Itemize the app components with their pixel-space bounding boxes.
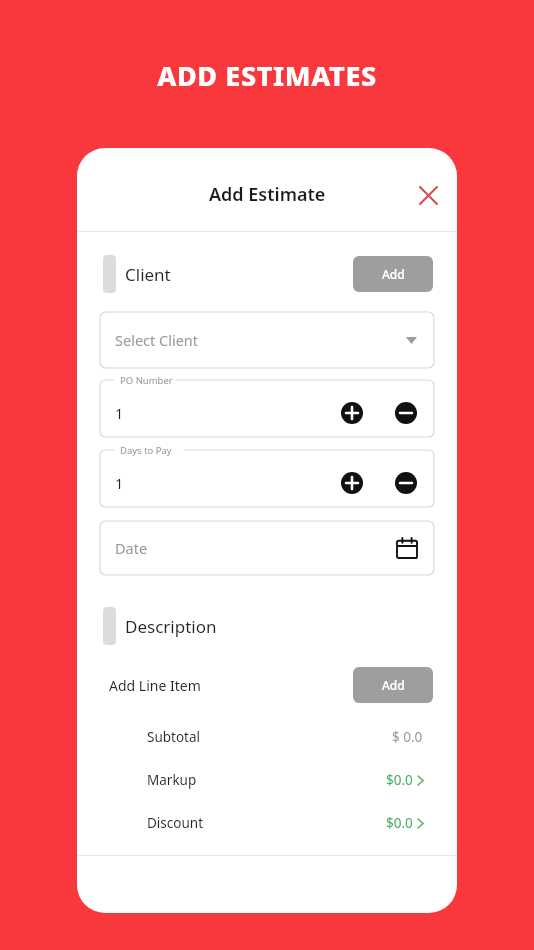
staticText: Select Client xyxy=(115,330,199,350)
button[interactable]: Increase xyxy=(337,468,367,498)
staticText: Date xyxy=(115,538,148,558)
staticText: Discount xyxy=(147,814,204,832)
staticText: Client xyxy=(125,263,171,286)
button[interactable]: Close xyxy=(410,177,446,213)
button[interactable]: Decrease xyxy=(391,468,421,498)
button[interactable]: Discount xyxy=(77,811,457,835)
button[interactable]: Date xyxy=(100,521,434,575)
staticText: Subtotal xyxy=(147,728,201,746)
staticText: Markup xyxy=(147,771,197,789)
button[interactable]: Increase xyxy=(337,398,367,428)
staticText: Add xyxy=(382,266,405,282)
button[interactable]: Add xyxy=(353,667,433,703)
button[interactable]: Add xyxy=(353,256,433,292)
button[interactable]: Decrease xyxy=(391,398,421,428)
staticText: Add Line Item xyxy=(109,676,201,695)
other: Pick date xyxy=(394,535,420,561)
staticText: $ 0.0 xyxy=(392,728,423,746)
staticText: PO Number xyxy=(120,374,173,387)
button[interactable]: Subtotal xyxy=(77,725,457,749)
button[interactable]: Select Client xyxy=(100,312,434,368)
staticText: 1 xyxy=(115,473,124,493)
staticText: ADD ESTIMATES xyxy=(157,57,377,94)
staticText: Add xyxy=(382,677,405,693)
staticText: Days to Pay xyxy=(120,444,172,457)
staticText: $0.0 xyxy=(386,814,413,832)
staticText: $0.0 xyxy=(386,771,413,789)
staticText: 1 xyxy=(115,403,124,423)
staticText: Add Estimate xyxy=(209,182,326,207)
button[interactable]: Markup xyxy=(77,768,457,792)
staticText: Description xyxy=(125,615,217,638)
